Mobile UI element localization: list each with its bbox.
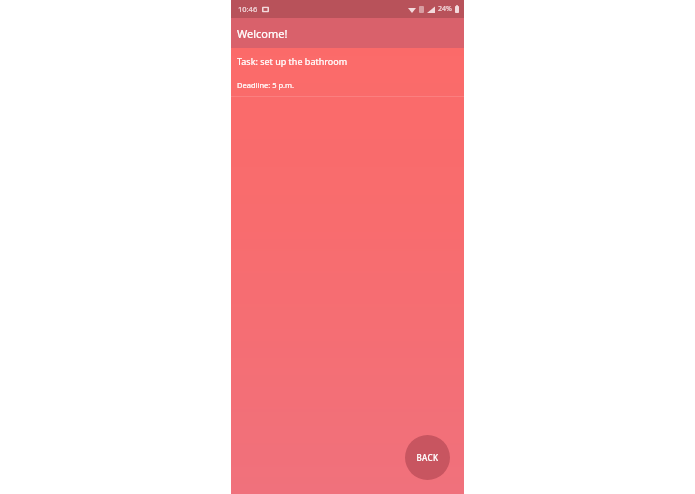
staticText: Welcome! bbox=[237, 26, 288, 41]
staticText: Deadline: 5 p.m. bbox=[237, 80, 295, 90]
staticText: BACK bbox=[416, 452, 439, 463]
button[interactable]: BACK bbox=[405, 435, 450, 480]
button[interactable]: Deadline: 5 p.m. bbox=[231, 74, 464, 96]
staticText: 24% bbox=[438, 4, 452, 14]
staticText: Task: set up the bathroom bbox=[237, 55, 348, 67]
button[interactable]: Task: set up the bathroom bbox=[231, 48, 464, 74]
staticText: 10:46 bbox=[238, 4, 258, 14]
